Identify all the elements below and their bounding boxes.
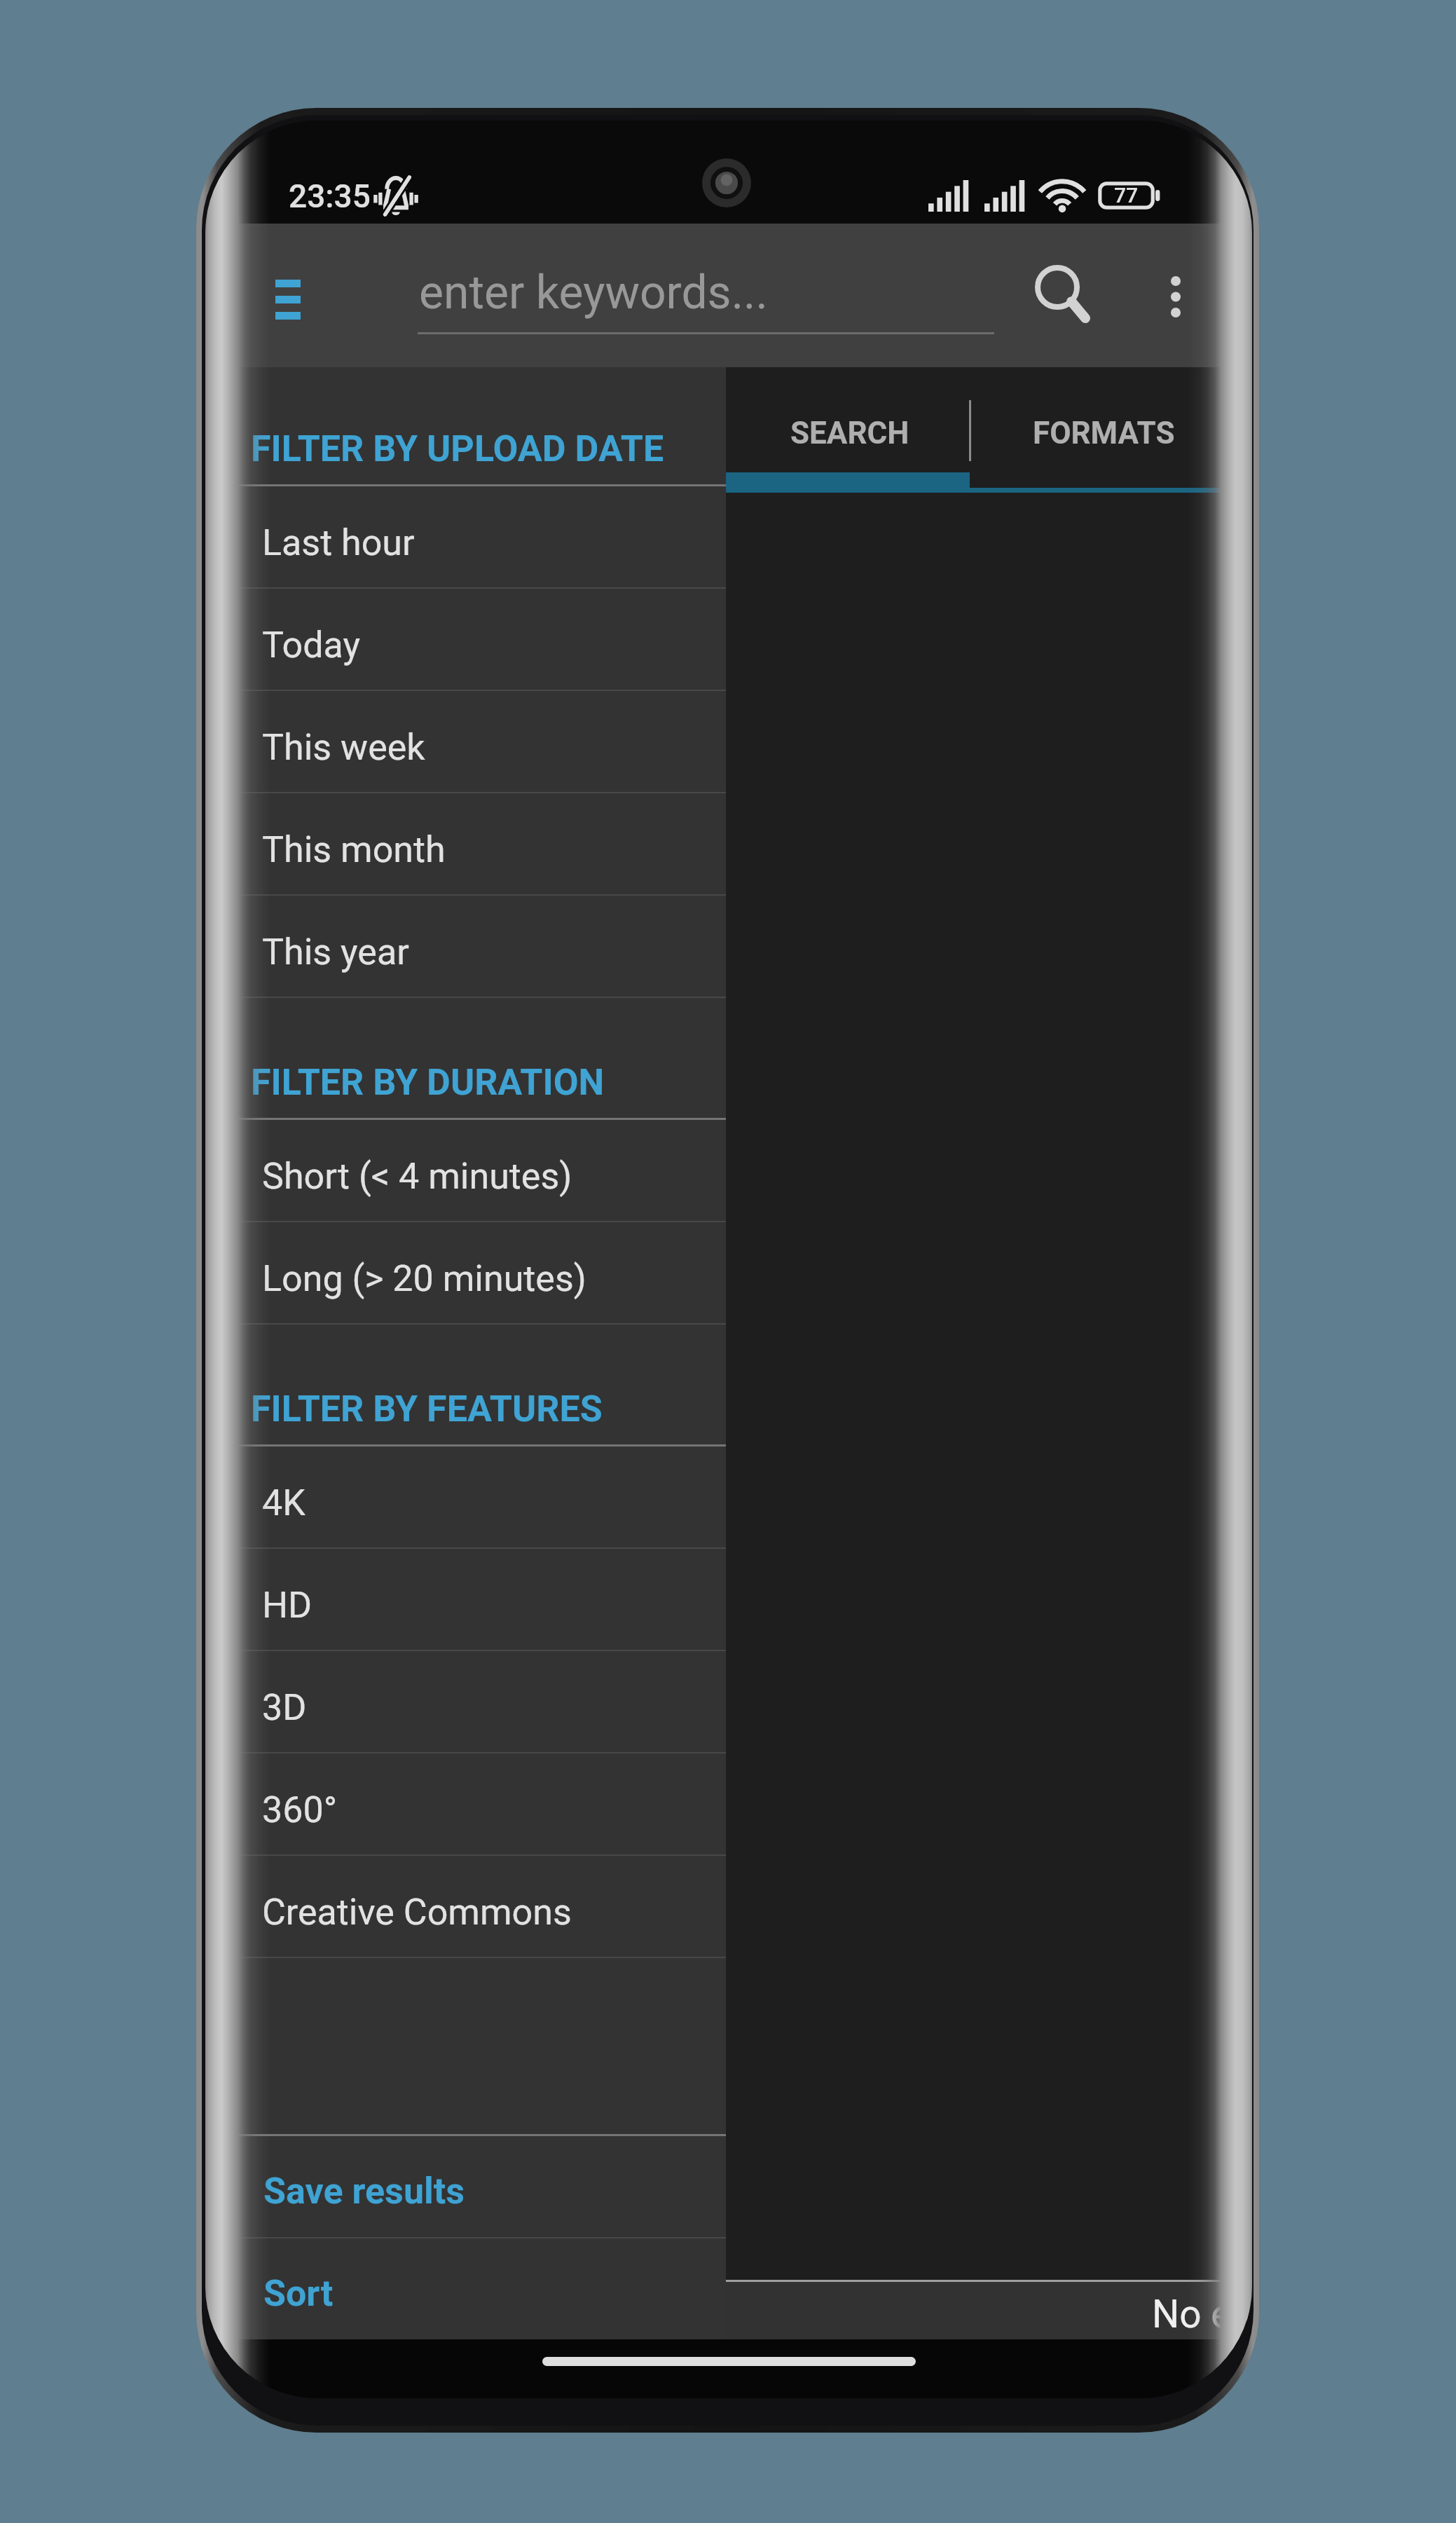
button[interactable]: Open navigation drawer <box>233 253 317 337</box>
staticText: 3D <box>262 1686 307 1729</box>
button[interactable]: This month <box>205 793 726 894</box>
staticText: This year <box>262 931 409 973</box>
button[interactable]: Sort <box>205 2238 726 2339</box>
staticText: Save results <box>263 2170 465 2213</box>
staticText: enter keywords... <box>419 266 768 320</box>
button[interactable]: Search <box>1008 238 1106 336</box>
staticText: Short (< 4 minutes) <box>262 1155 572 1198</box>
button[interactable]: HD <box>205 1549 726 1650</box>
button[interactable]: Creative Commons <box>205 1856 726 1957</box>
button[interactable]: SEARCH <box>745 381 955 485</box>
button[interactable]: Save results <box>205 2136 726 2237</box>
staticText: HD <box>262 1584 313 1627</box>
button[interactable]: 3D <box>205 1651 726 1752</box>
staticText: FILTER BY DURATION <box>251 1061 605 1104</box>
staticText: FILTER BY FEATURES <box>251 1388 603 1430</box>
staticText: No enough space <box>1152 2292 1252 2337</box>
button[interactable]: 4K <box>205 1447 726 1547</box>
button[interactable]: Last hour <box>205 486 726 587</box>
button[interactable]: This week <box>205 691 726 792</box>
button[interactable]: Long (> 20 minutes) <box>205 1222 726 1323</box>
button[interactable]: Short (< 4 minutes) <box>205 1120 726 1221</box>
button[interactable]: More options <box>1127 254 1211 339</box>
staticText: Creative Commons <box>262 1891 572 1934</box>
staticText: Today <box>262 624 361 666</box>
staticText: SEARCH <box>790 415 909 451</box>
staticText: This month <box>262 828 446 871</box>
staticText: 77 <box>1114 183 1139 207</box>
staticText: This week <box>262 726 425 769</box>
staticText: 4K <box>262 1482 305 1524</box>
button[interactable]: 360° <box>205 1753 726 1854</box>
staticText: FILTER BY UPLOAD DATE <box>251 428 664 470</box>
staticText: 23:35 <box>289 177 371 215</box>
staticText: 360° <box>262 1789 338 1831</box>
staticText: Last hour <box>262 521 415 564</box>
staticText: Sort <box>263 2272 334 2315</box>
button[interactable]: Today <box>205 589 726 690</box>
staticText: FORMATS <box>1033 415 1175 451</box>
button[interactable]: FORMATS <box>998 381 1209 485</box>
button[interactable]: This year <box>205 896 726 997</box>
staticText: Long (> 20 minutes) <box>262 1257 586 1300</box>
